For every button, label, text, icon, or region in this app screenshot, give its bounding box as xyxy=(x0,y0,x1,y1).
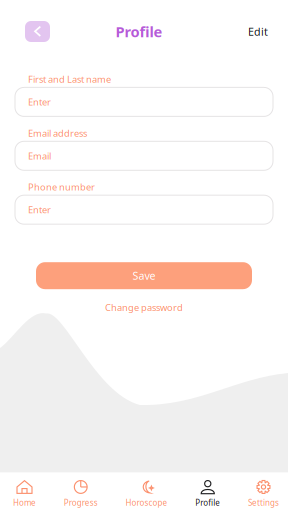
staticText: Profile xyxy=(195,497,220,508)
staticText: Email address xyxy=(28,127,87,139)
button[interactable]: Edit xyxy=(248,24,268,39)
button[interactable]: Save xyxy=(36,262,252,289)
staticText: Phone number xyxy=(28,181,95,193)
staticText: Save xyxy=(132,269,155,283)
staticText: Enter xyxy=(28,96,51,108)
button[interactable]: Horoscope xyxy=(125,472,167,512)
staticText: Settings xyxy=(248,497,279,508)
button[interactable]: Progress xyxy=(64,472,98,512)
staticText: Profile xyxy=(115,22,162,41)
staticText: First and Last name xyxy=(28,73,111,85)
button[interactable]: Back xyxy=(25,21,50,42)
staticText: Email xyxy=(28,150,51,162)
staticText: Enter xyxy=(28,203,51,216)
button[interactable]: Profile xyxy=(195,472,220,512)
staticText: Horoscope xyxy=(125,497,167,508)
staticText: Change password xyxy=(105,301,183,314)
button[interactable]: Home xyxy=(13,472,36,512)
staticText: Progress xyxy=(64,497,98,508)
staticText: Edit xyxy=(248,24,268,39)
button[interactable]: Change password xyxy=(105,289,183,314)
staticText: Home xyxy=(13,497,36,508)
button[interactable]: Settings xyxy=(248,472,279,512)
